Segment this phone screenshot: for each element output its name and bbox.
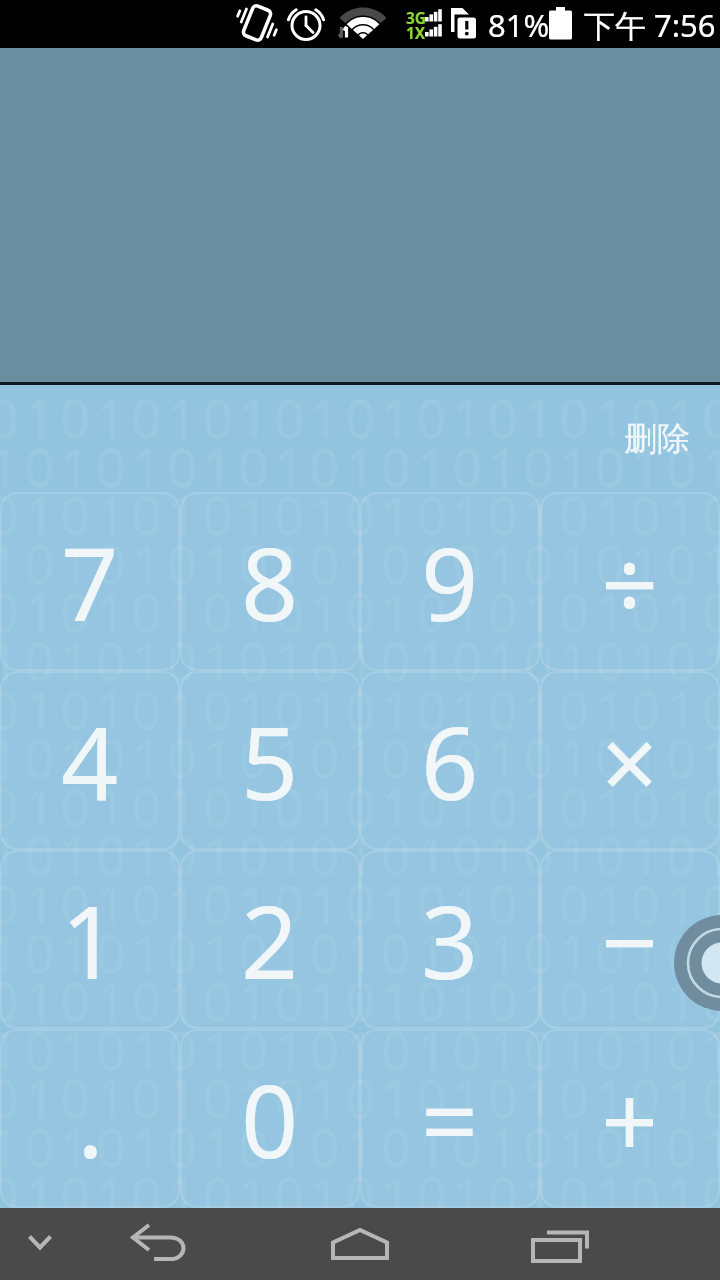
button[interactable]: 1 [1, 851, 179, 1028]
staticText: × [601, 693, 659, 829]
staticText: 2 [241, 872, 299, 1008]
button[interactable]: 9 [361, 493, 539, 670]
staticText: 4 [61, 693, 119, 829]
button[interactable]: 3 [361, 851, 539, 1028]
button[interactable]: ÷ [541, 493, 719, 670]
staticText: − [601, 872, 659, 1008]
staticText: 9 [421, 514, 479, 650]
button[interactable]: 0 [181, 1030, 359, 1207]
staticText: . [77, 1051, 104, 1187]
staticText: 7 [61, 514, 119, 650]
staticText: 3 [421, 872, 479, 1008]
button[interactable]: = [361, 1030, 539, 1207]
button[interactable]: Hide keyboard [0, 1208, 110, 1280]
button[interactable]: 删除 [624, 418, 690, 460]
button[interactable]: 4 [1, 672, 179, 849]
button[interactable]: Home [305, 1208, 415, 1280]
staticText: 删除 [624, 418, 690, 460]
button[interactable]: Back [110, 1208, 220, 1280]
button[interactable]: . [1, 1030, 179, 1207]
button[interactable]: − [541, 851, 719, 1028]
staticText: 8 [241, 514, 299, 650]
staticText: + [601, 1051, 659, 1187]
staticText: 0 [241, 1051, 299, 1187]
staticText: 6 [421, 693, 479, 829]
button[interactable]: 8 [181, 493, 359, 670]
staticText: 5 [241, 693, 299, 829]
button[interactable]: 5 [181, 672, 359, 849]
button[interactable]: + [541, 1030, 719, 1207]
staticText: = [421, 1051, 479, 1187]
button[interactable]: 6 [361, 672, 539, 849]
staticText: 1 [61, 872, 119, 1008]
staticText: ÷ [601, 514, 659, 650]
button[interactable]: Recent apps [505, 1208, 615, 1280]
button[interactable]: 7 [1, 493, 179, 670]
button[interactable]: 2 [181, 851, 359, 1028]
button[interactable]: × [541, 672, 719, 849]
